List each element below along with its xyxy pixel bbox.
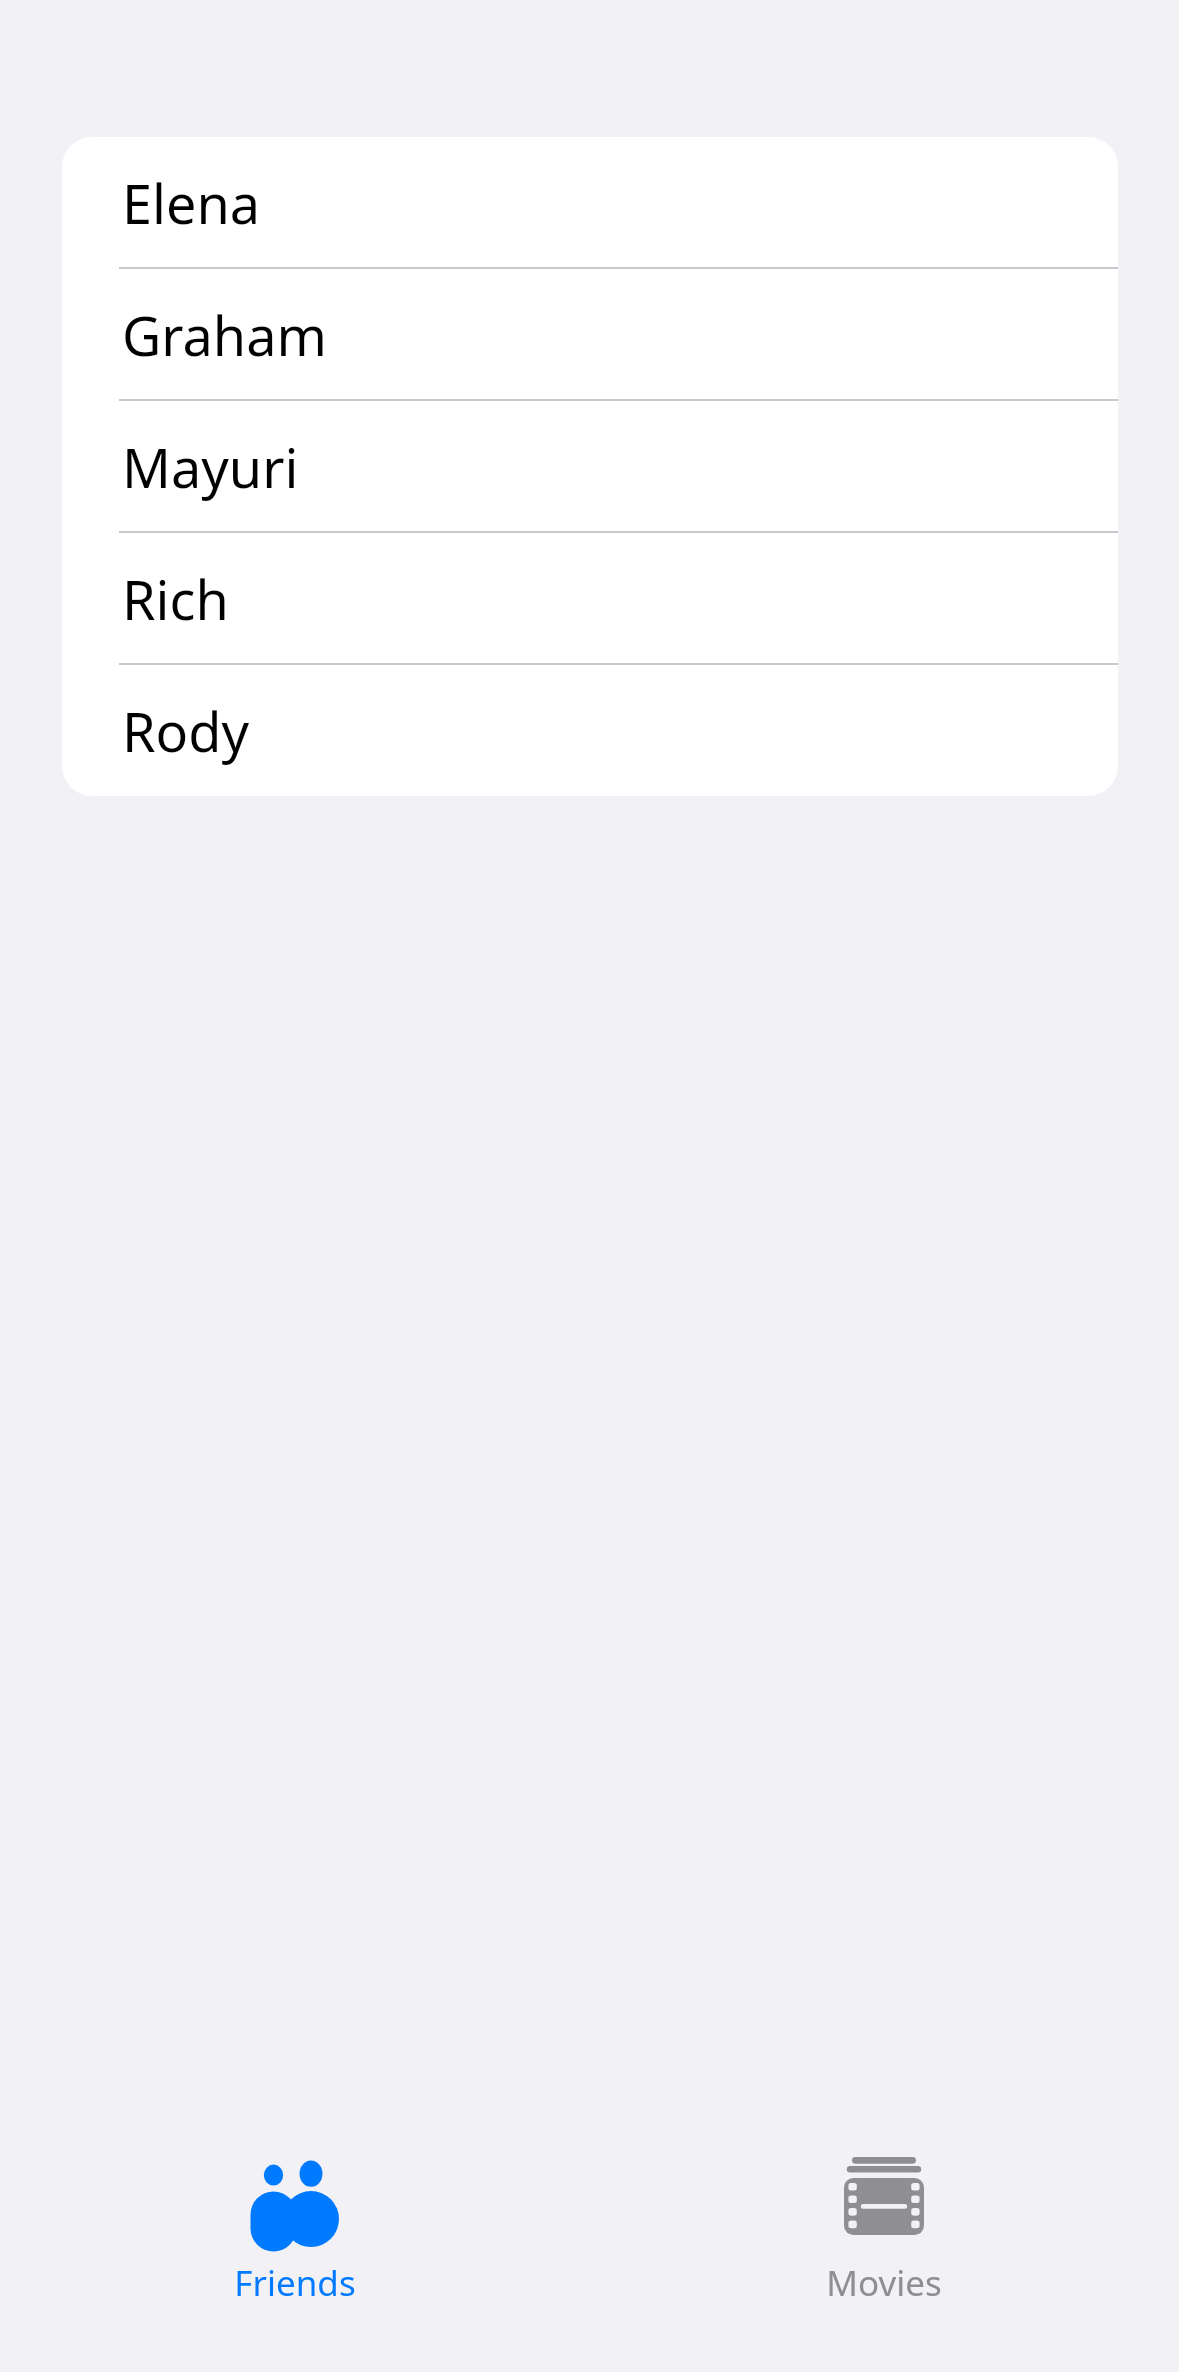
- staticText: Elena: [122, 166, 261, 240]
- button[interactable]: Mayuri: [62, 401, 1118, 533]
- staticText: Graham: [122, 298, 327, 372]
- button[interactable]: Friends: [0, 2072, 589, 2372]
- staticText: Rody: [122, 694, 250, 768]
- staticText: Movies: [826, 2259, 942, 2307]
- staticText: Rich: [122, 562, 229, 636]
- button[interactable]: Rich: [62, 533, 1118, 665]
- button[interactable]: Rody: [62, 665, 1118, 796]
- button[interactable]: Movies: [589, 2072, 1179, 2372]
- button[interactable]: Elena: [62, 137, 1118, 269]
- button[interactable]: Graham: [62, 269, 1118, 401]
- staticText: Mayuri: [122, 430, 299, 504]
- staticText: Friends: [234, 2259, 356, 2307]
- other: Friends: [245, 2157, 345, 2235]
- other: Movies: [834, 2157, 934, 2235]
